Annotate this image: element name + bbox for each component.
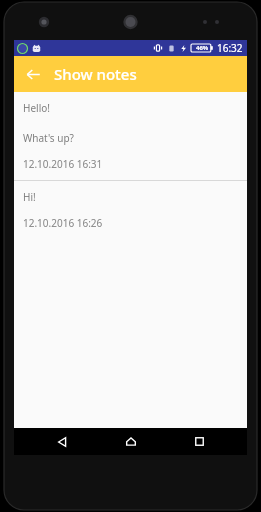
button[interactable]: Home <box>111 428 151 455</box>
staticText: 12.10.2016 16:31 <box>23 157 103 171</box>
staticText: What's up? <box>23 131 74 145</box>
staticText: Show notes <box>54 64 137 84</box>
button[interactable]: Recent apps <box>179 428 219 455</box>
button[interactable]: Back <box>42 428 82 455</box>
staticText: 16:32 <box>217 41 243 55</box>
staticText: 12.10.2016 16:26 <box>23 216 103 230</box>
staticText: Hi! <box>23 190 36 204</box>
button[interactable]: Navigate up <box>20 61 46 87</box>
button[interactable]: Hello! <box>14 92 247 180</box>
button[interactable]: Hi! <box>14 181 247 239</box>
staticText: 46% <box>196 44 209 52</box>
staticText: Hello! <box>23 101 50 115</box>
